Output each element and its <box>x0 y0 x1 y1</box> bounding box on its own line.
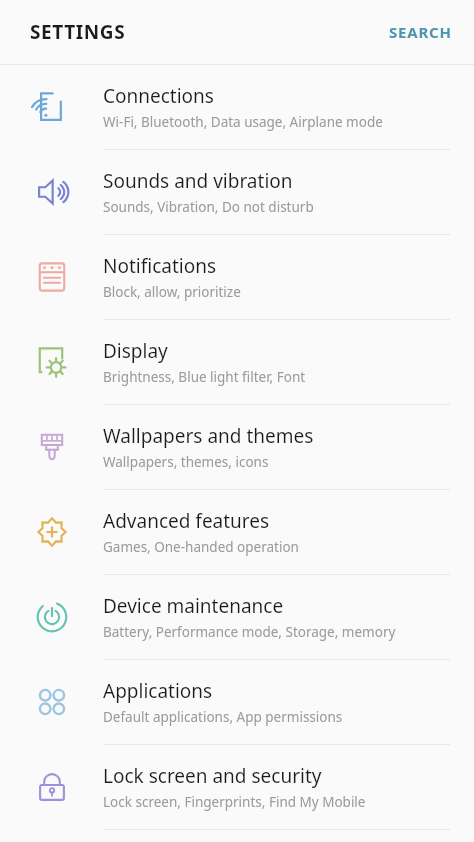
staticText: Applications <box>103 678 213 704</box>
staticText: SETTINGS <box>30 19 126 45</box>
staticText: Device maintenance <box>103 593 284 619</box>
button[interactable]: Wallpapers and themes <box>0 405 474 490</box>
button[interactable]: Applications <box>0 660 474 745</box>
button[interactable]: Connections <box>0 65 474 150</box>
staticText: Wallpapers and themes <box>103 423 314 449</box>
staticText: Games, One-handed operation <box>103 538 299 556</box>
staticText: Advanced features <box>103 508 270 534</box>
staticText: Notifications <box>103 253 217 279</box>
button[interactable]: Advanced features <box>0 490 474 575</box>
staticText: SEARCH <box>389 22 452 42</box>
staticText: Sounds and vibration <box>103 168 293 194</box>
staticText: Display <box>103 338 168 364</box>
button[interactable]: Sounds and vibration <box>0 150 474 235</box>
staticText: Block, allow, prioritize <box>103 283 241 301</box>
staticText: Sounds, Vibration, Do not disturb <box>103 198 314 216</box>
staticText: Default applications, App permissions <box>103 708 343 726</box>
button[interactable]: Lock screen and security <box>0 745 474 830</box>
staticText: Connections <box>103 83 214 109</box>
staticText: Brightness, Blue light filter, Font <box>103 368 306 386</box>
staticText: Lock screen, Fingerprints, Find My Mobil… <box>103 793 366 811</box>
button[interactable]: Notifications <box>0 235 474 320</box>
staticText: Wallpapers, themes, icons <box>103 453 269 471</box>
button[interactable]: Device maintenance <box>0 575 474 660</box>
staticText: Lock screen and security <box>103 763 322 789</box>
staticText: Wi-Fi, Bluetooth, Data usage, Airplane m… <box>103 113 383 131</box>
button[interactable]: SEARCH <box>367 12 474 52</box>
staticText: Battery, Performance mode, Storage, memo… <box>103 623 396 641</box>
button[interactable]: Display <box>0 320 474 405</box>
